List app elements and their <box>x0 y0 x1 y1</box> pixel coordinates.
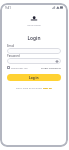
button[interactable]: Sign up <box>43 86 52 89</box>
staticText: Login <box>0 35 68 42</box>
staticText: Don't have an account? <box>16 86 43 89</box>
button[interactable]: Show password <box>55 59 59 63</box>
staticText: Remember me <box>11 66 28 69</box>
button[interactable]: Remember me <box>7 66 28 69</box>
staticText: 9:41 <box>5 6 11 10</box>
staticText: Password <box>7 54 20 58</box>
staticText: Log in <box>29 76 39 80</box>
button[interactable]: Log in <box>7 74 61 81</box>
button[interactable]: Show password <box>7 58 61 64</box>
button[interactable]: Forgot password? <box>41 66 61 69</box>
staticText: YOUR LOGO <box>27 23 41 26</box>
staticText: Email <box>7 44 15 48</box>
button[interactable] <box>7 48 61 54</box>
